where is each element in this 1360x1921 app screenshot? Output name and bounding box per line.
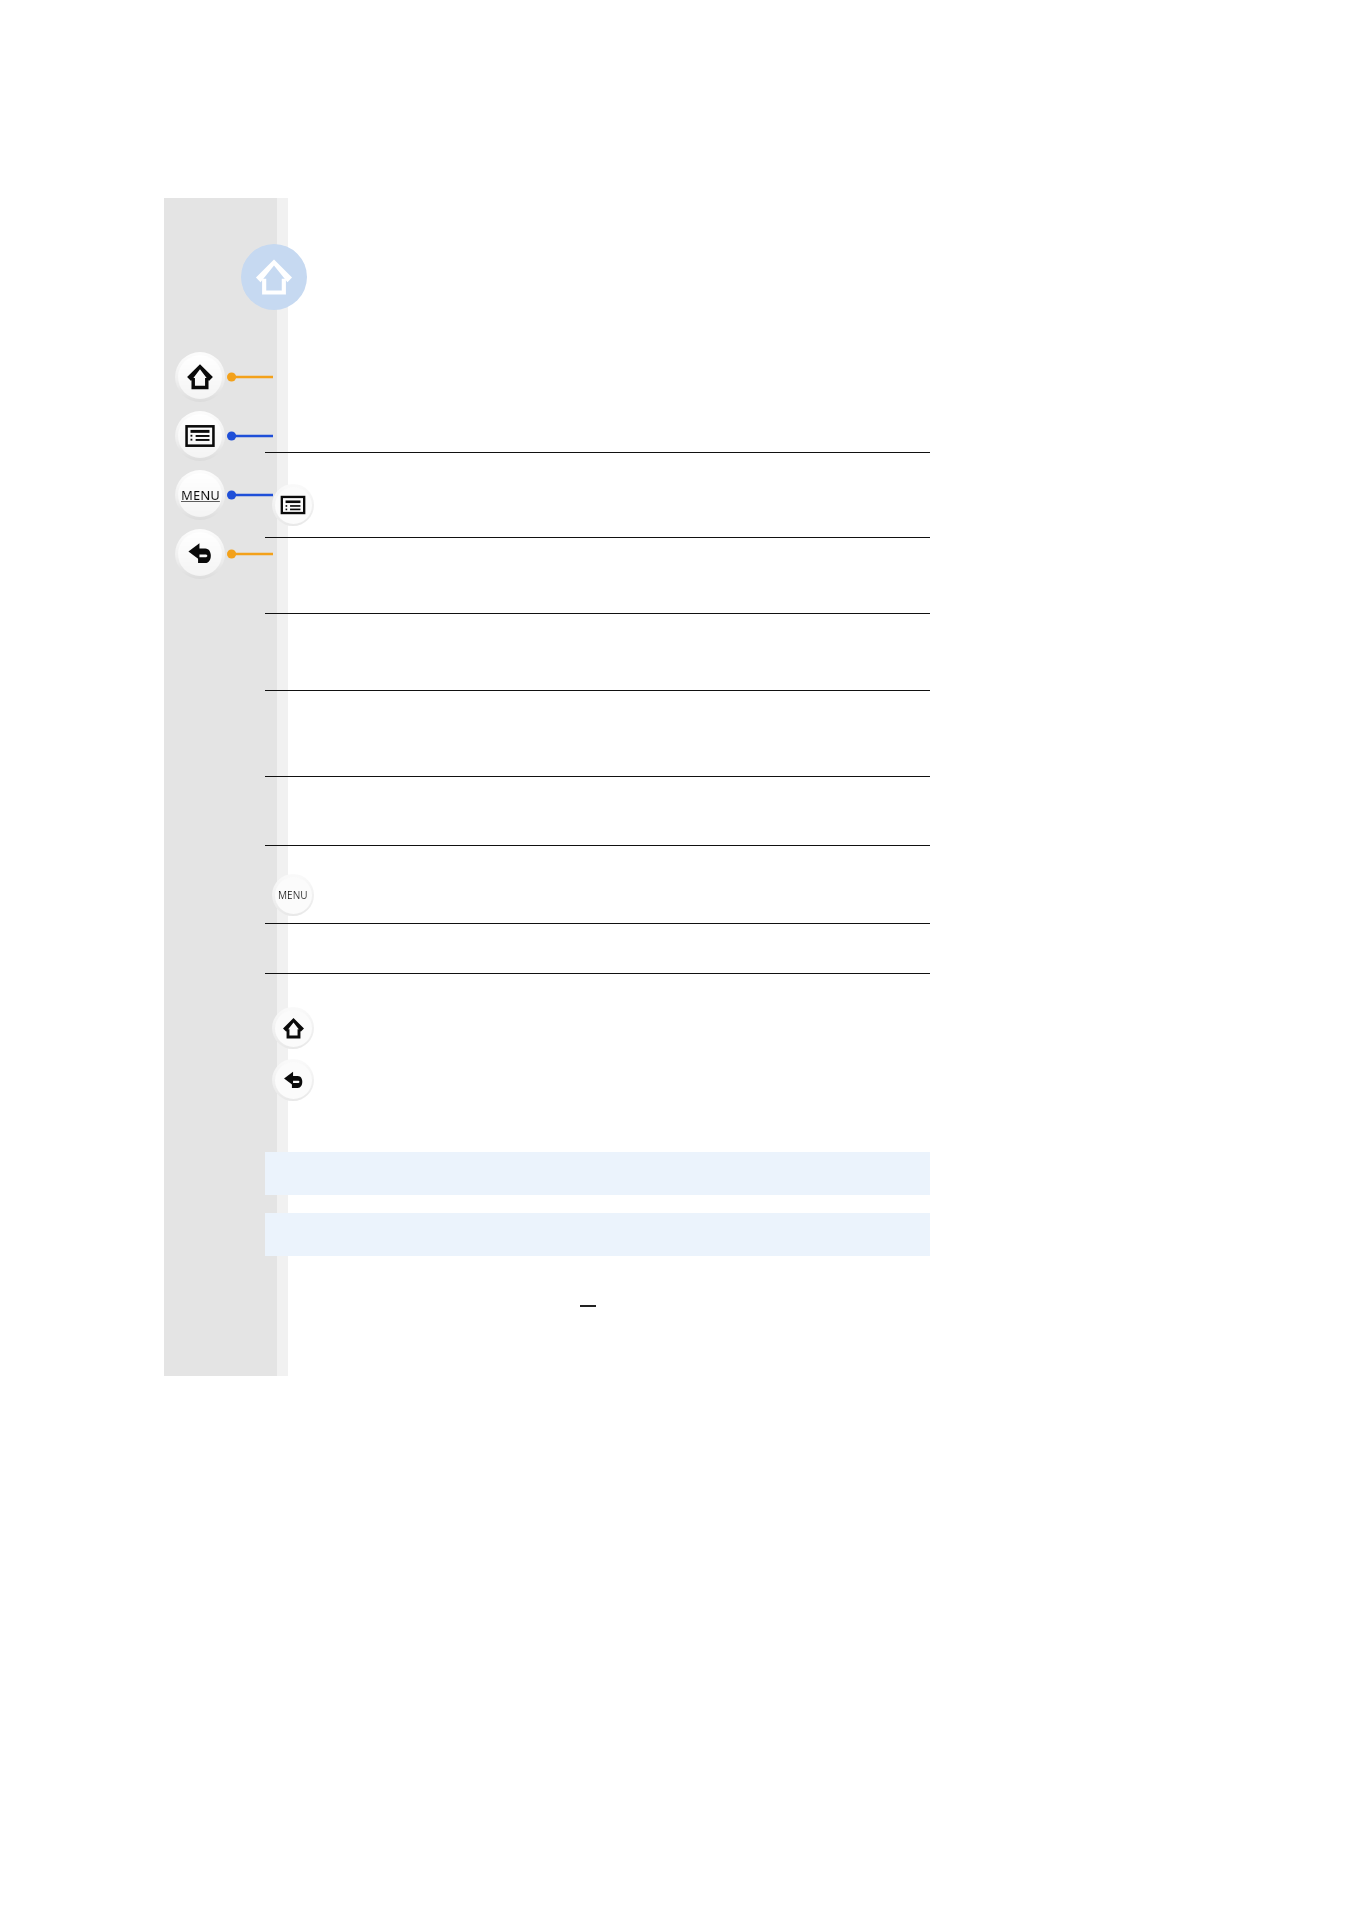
button[interactable]: Home bbox=[272, 1007, 314, 1049]
button[interactable]: Home button bbox=[175, 352, 225, 402]
staticText: MENU bbox=[181, 486, 220, 504]
button[interactable]: Return button bbox=[175, 529, 225, 579]
button[interactable]: Display bbox=[272, 484, 314, 526]
button[interactable]: Display button bbox=[175, 411, 225, 461]
staticText: MENU bbox=[278, 888, 308, 902]
button[interactable]: Return bbox=[272, 1059, 314, 1101]
button[interactable]: Home bbox=[241, 244, 307, 310]
button[interactable]: Menu bbox=[272, 874, 314, 916]
button[interactable]: Menu button bbox=[175, 470, 225, 520]
